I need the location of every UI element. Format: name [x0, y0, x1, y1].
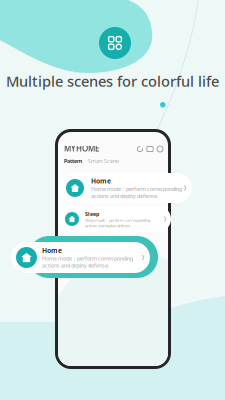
staticText: Multiple scenes for colorful life — [6, 71, 219, 91]
staticText: actions and deploy defense — [85, 223, 130, 228]
staticText: Pattern — [64, 157, 82, 165]
button[interactable]: Sleep — [59, 206, 171, 232]
staticText: Sleep — [85, 210, 99, 218]
staticText: Smart Scene — [88, 157, 119, 165]
button[interactable]: Profile — [156, 145, 163, 152]
button[interactable]: Home — [59, 173, 192, 203]
staticText: MYHOME — [64, 143, 99, 154]
staticText: Home mode：perform corresponding — [91, 185, 182, 192]
staticText: Home mode：perform corresponding — [42, 255, 133, 262]
staticText: actions and deploy defense. — [42, 262, 109, 269]
staticText: actions and deploy defense. — [91, 192, 158, 200]
button[interactable]: Home — [11, 242, 150, 273]
staticText: Home — [42, 246, 62, 255]
staticText: Sleep mode：perform corresponding — [85, 218, 150, 223]
staticText: Home — [91, 176, 111, 185]
button[interactable]: Refresh — [136, 145, 143, 152]
button[interactable]: Messages — [146, 145, 153, 152]
